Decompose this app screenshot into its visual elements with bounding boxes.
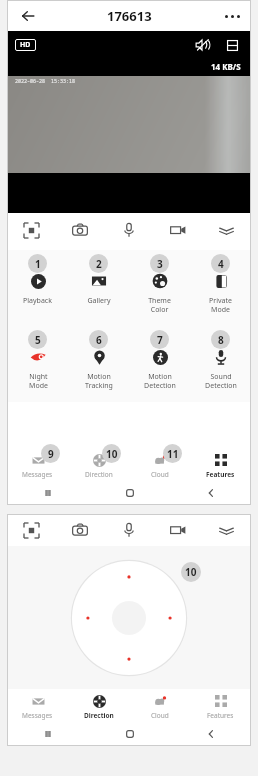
- staticText: 5: [35, 333, 41, 347]
- button[interactable]: Cloud: [129, 689, 190, 722]
- button[interactable]: Home: [89, 481, 170, 505]
- button[interactable]: Motion Detection: [129, 326, 190, 402]
- button[interactable]: Features: [190, 448, 251, 481]
- button[interactable]: Layout: [221, 34, 243, 56]
- staticText: HD: [20, 40, 31, 50]
- button[interactable]: Record: [153, 514, 202, 546]
- button[interactable]: Direction: [68, 689, 129, 722]
- button[interactable]: Direction: [68, 448, 129, 481]
- button[interactable]: Record: [153, 214, 202, 246]
- staticText: 3: [157, 257, 163, 271]
- button[interactable]: Playback: [7, 250, 68, 326]
- button[interactable]: Back: [15, 3, 41, 29]
- button[interactable]: Theme Color: [129, 250, 190, 326]
- staticText: 10: [185, 565, 197, 579]
- button[interactable]: More options: [219, 3, 245, 29]
- button[interactable]: Back: [170, 722, 251, 746]
- staticText: Theme Color: [148, 296, 171, 314]
- staticText: Cloud: [151, 470, 169, 479]
- button[interactable]: Features: [190, 689, 251, 722]
- staticText: Sound Detection: [205, 372, 237, 390]
- button[interactable]: Motion Tracking: [68, 326, 129, 402]
- staticText: Private Mode: [209, 296, 232, 314]
- staticText: Direction: [85, 470, 113, 479]
- staticText: 1: [35, 257, 41, 271]
- button[interactable]: Down: [112, 646, 146, 680]
- staticText: Direction: [84, 711, 114, 720]
- staticText: 4: [218, 257, 224, 271]
- staticText: 176613: [107, 7, 152, 25]
- button[interactable]: Left: [67, 601, 101, 635]
- button[interactable]: HD: [20, 40, 31, 50]
- staticText: 7: [157, 333, 163, 347]
- button[interactable]: Talk: [104, 214, 153, 246]
- button[interactable]: Mute: [191, 34, 213, 56]
- button[interactable]: Recents: [7, 722, 89, 746]
- button[interactable]: Home: [89, 722, 170, 746]
- button[interactable]: Fullscreen: [7, 214, 55, 246]
- staticText: Playback: [23, 296, 52, 306]
- staticText: 8: [218, 333, 224, 347]
- button[interactable]: Up: [112, 556, 146, 590]
- button[interactable]: Right: [157, 601, 191, 635]
- button[interactable]: Gallery: [68, 250, 129, 326]
- staticText: 10: [106, 447, 118, 461]
- staticText: 11: [167, 447, 179, 461]
- button[interactable]: Recents: [7, 481, 89, 505]
- staticText: Features: [207, 711, 234, 720]
- staticText: Motion Detection: [144, 372, 176, 390]
- staticText: 2: [96, 257, 102, 271]
- button[interactable]: Night Mode: [7, 326, 68, 402]
- button[interactable]: More: [202, 214, 251, 246]
- button[interactable]: Messages: [7, 689, 68, 722]
- staticText: 2022-06-28 15:33:18: [15, 78, 76, 85]
- staticText: Gallery: [87, 296, 111, 306]
- staticText: Messages: [22, 470, 53, 479]
- button[interactable]: Private Mode: [190, 250, 251, 326]
- staticText: Messages: [22, 711, 53, 720]
- staticText: 6: [96, 333, 102, 347]
- staticText: 9: [48, 447, 54, 461]
- button[interactable]: Sound Detection: [190, 326, 251, 402]
- button[interactable]: Cloud: [129, 448, 190, 481]
- button[interactable]: Back: [170, 481, 251, 505]
- button[interactable]: Fullscreen: [7, 514, 55, 546]
- staticText: 14 KB/S: [211, 61, 241, 72]
- staticText: Motion Tracking: [85, 372, 113, 390]
- button[interactable]: Talk: [104, 514, 153, 546]
- staticText: Night Mode: [29, 372, 48, 390]
- button[interactable]: More: [202, 514, 251, 546]
- button[interactable]: Messages: [7, 448, 68, 481]
- staticText: Features: [206, 470, 235, 479]
- button[interactable]: Snapshot: [55, 214, 104, 246]
- staticText: Cloud: [151, 711, 169, 720]
- button[interactable]: Snapshot: [55, 514, 104, 546]
